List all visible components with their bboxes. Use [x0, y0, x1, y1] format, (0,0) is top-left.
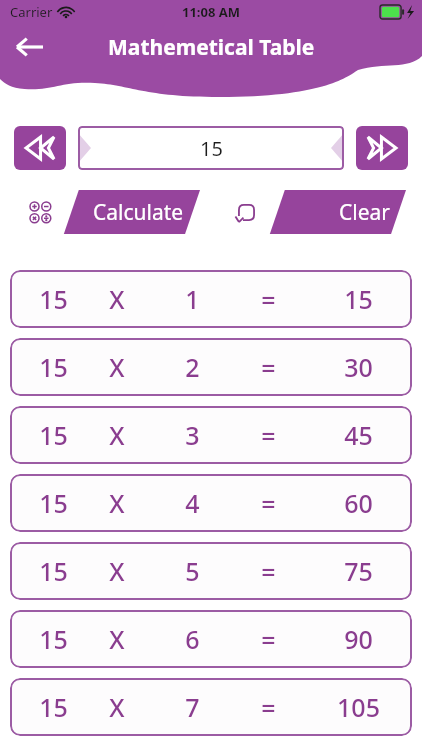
staticText: 15 [39, 282, 68, 316]
button[interactable]: 15 [10, 406, 412, 464]
button[interactable]: Back [6, 24, 52, 70]
staticText: Calculate [93, 198, 184, 227]
staticText: 15 [39, 486, 68, 520]
staticText: = [261, 554, 276, 588]
staticText: 5 [185, 554, 200, 588]
staticText: = [261, 418, 276, 452]
button[interactable]: 15 [78, 126, 344, 170]
staticText: 45 [344, 418, 373, 452]
staticText: 4 [185, 486, 200, 520]
staticText: = [261, 282, 276, 316]
staticText: 105 [337, 690, 380, 724]
staticText: X [109, 622, 125, 656]
staticText: 15 [200, 135, 223, 162]
staticText: 1 [185, 282, 200, 316]
staticText: Mathemetical Table [108, 33, 315, 62]
staticText: X [109, 554, 125, 588]
staticText: 6 [185, 622, 200, 656]
staticText: X [109, 690, 125, 724]
button[interactable]: 15 [10, 542, 412, 600]
button[interactable]: Previous [14, 126, 66, 170]
button[interactable]: 15 [10, 678, 412, 736]
staticText: 7 [185, 690, 200, 724]
button[interactable]: 15 [10, 338, 412, 396]
staticText: = [261, 486, 276, 520]
staticText: = [261, 690, 276, 724]
staticText: = [261, 622, 276, 656]
button[interactable]: 15 [10, 610, 412, 668]
staticText: 3 [185, 418, 200, 452]
staticText: 30 [344, 350, 373, 384]
staticText: 15 [39, 418, 68, 452]
button[interactable]: 15 [10, 474, 412, 532]
button[interactable]: Calculate [16, 190, 200, 234]
staticText: 60 [344, 486, 373, 520]
staticText: X [109, 350, 125, 384]
staticText: 15 [39, 690, 68, 724]
staticText: 15 [39, 554, 68, 588]
button[interactable]: 15 [10, 270, 412, 328]
staticText: 75 [344, 554, 373, 588]
staticText: Clear [339, 198, 390, 227]
staticText: = [261, 350, 276, 384]
button[interactable]: Clear [222, 190, 406, 234]
staticText: X [109, 486, 125, 520]
staticText: X [109, 418, 125, 452]
staticText: 15 [39, 622, 68, 656]
staticText: X [109, 282, 125, 316]
staticText: 15 [39, 350, 68, 384]
button[interactable]: Next [356, 126, 408, 170]
staticText: 2 [185, 350, 200, 384]
staticText: 15 [344, 282, 373, 316]
staticText: Carrier [10, 3, 53, 21]
staticText: 90 [344, 622, 373, 656]
staticText: 11:08 AM [182, 3, 241, 21]
